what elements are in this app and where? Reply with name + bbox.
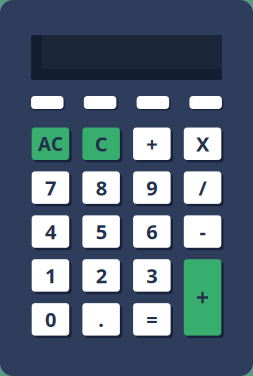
button[interactable]: Memory slot — [189, 96, 222, 109]
staticText: C — [95, 130, 108, 157]
button[interactable]: C — [82, 127, 120, 160]
staticText: 2 — [96, 262, 107, 289]
staticText: + — [196, 282, 209, 312]
staticText: 4 — [45, 218, 56, 245]
button[interactable]: Memory slot — [31, 96, 63, 109]
button[interactable]: . — [82, 303, 120, 336]
button[interactable]: + — [184, 259, 221, 336]
button[interactable]: / — [184, 171, 221, 204]
button[interactable]: 8 — [82, 171, 120, 204]
staticText: 6 — [146, 218, 157, 245]
button[interactable]: 7 — [32, 171, 69, 204]
button[interactable]: X — [184, 127, 221, 160]
button[interactable]: Memory slot — [84, 96, 116, 109]
staticText: 7 — [45, 174, 56, 201]
button[interactable]: 9 — [133, 171, 171, 204]
staticText: 5 — [96, 218, 107, 245]
button[interactable]: 5 — [82, 215, 120, 248]
staticText: = — [146, 306, 157, 333]
staticText: X — [196, 130, 209, 157]
staticText: 0 — [45, 306, 56, 333]
staticText: AC — [38, 131, 63, 156]
staticText: . — [98, 306, 104, 333]
staticText: 8 — [96, 174, 107, 201]
staticText: + — [146, 130, 157, 157]
button[interactable]: 6 — [133, 215, 171, 248]
staticText: / — [199, 174, 207, 201]
button[interactable]: AC — [32, 127, 69, 160]
button[interactable]: 2 — [82, 259, 120, 292]
staticText: 3 — [146, 262, 157, 289]
staticText: - — [200, 218, 206, 245]
button[interactable]: 1 — [32, 259, 69, 292]
button[interactable]: 4 — [32, 215, 69, 248]
button[interactable]: + — [133, 127, 171, 160]
button[interactable]: 3 — [133, 259, 171, 292]
button[interactable]: - — [184, 215, 221, 248]
staticText: 9 — [146, 174, 157, 201]
button[interactable]: 0 — [32, 303, 69, 336]
staticText: 1 — [45, 262, 56, 289]
button[interactable]: Memory slot — [137, 96, 169, 109]
button[interactable]: = — [133, 303, 171, 336]
